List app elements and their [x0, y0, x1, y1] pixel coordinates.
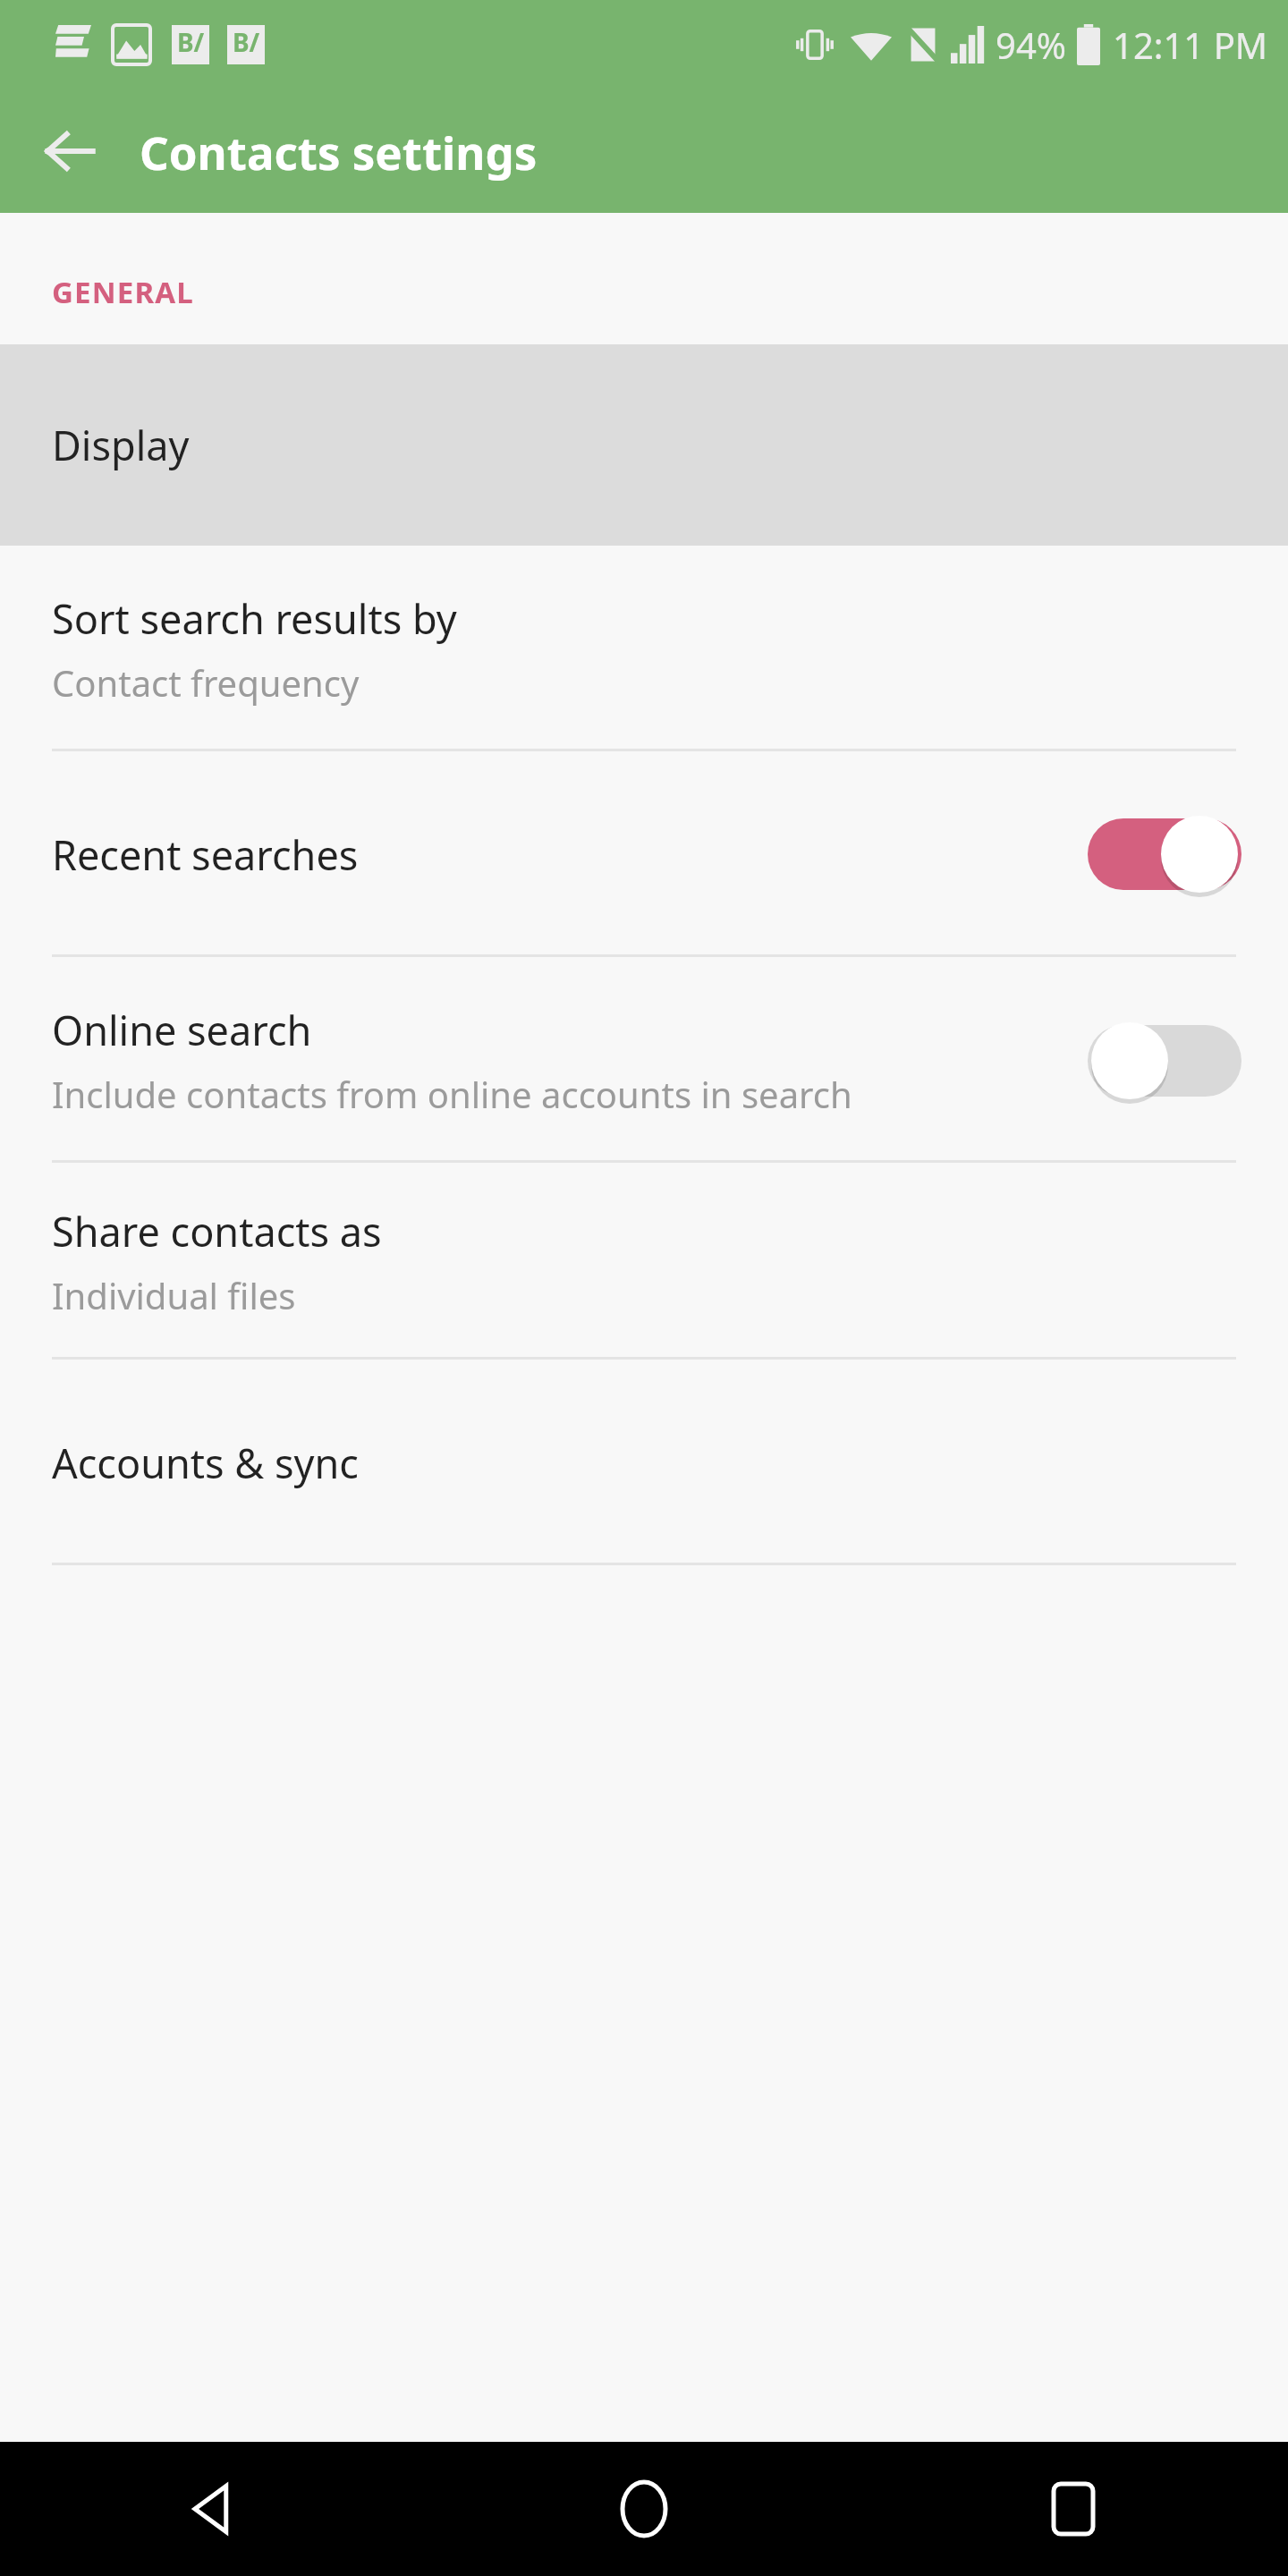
staticText: Accounts & sync — [52, 1436, 359, 1490]
button[interactable]: Back — [0, 2442, 429, 2576]
staticText: Contact frequency — [52, 658, 360, 707]
button[interactable]: Share contacts as — [0, 1163, 1288, 1360]
staticText: Sort search results by — [52, 591, 457, 646]
button[interactable]: Online search — [0, 957, 1288, 1163]
button[interactable]: Home — [429, 2442, 859, 2576]
button[interactable]: Back — [23, 105, 116, 198]
button[interactable]: On — [1088, 809, 1241, 899]
button[interactable]: Off — [1088, 1016, 1241, 1106]
staticText: Include contacts from online accounts in… — [52, 1070, 852, 1118]
staticText: 94% — [996, 21, 1066, 69]
staticText: Online search — [52, 1003, 312, 1057]
staticText: B/R — [172, 25, 209, 64]
staticText: B/R — [227, 25, 265, 64]
staticText: Individual files — [52, 1271, 296, 1319]
staticText: 12:11 PM — [1113, 21, 1268, 69]
button[interactable]: Accounts & sync — [0, 1360, 1288, 1565]
button[interactable]: Recent apps — [859, 2442, 1288, 2576]
staticText: Share contacts as — [52, 1204, 382, 1258]
staticText: Contacts settings — [140, 121, 538, 182]
button[interactable]: Recent searches — [0, 751, 1288, 957]
staticText: GENERAL — [52, 272, 195, 312]
staticText: Display — [52, 418, 190, 472]
staticText: Recent searches — [52, 827, 359, 882]
button[interactable]: Display — [0, 344, 1288, 546]
button[interactable]: Sort search results by — [0, 546, 1288, 751]
